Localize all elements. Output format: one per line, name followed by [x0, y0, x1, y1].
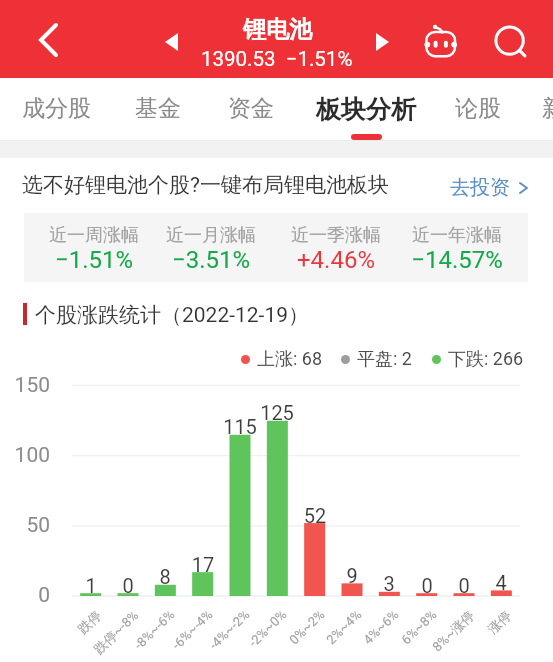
staticText: 115 [210, 415, 270, 438]
staticText: 新闻 [542, 94, 553, 123]
staticText: 9 [322, 564, 382, 587]
staticText: 锂电池 [243, 15, 312, 44]
staticText: -4%~-2% [156, 607, 252, 662]
staticText: 0 [98, 574, 158, 597]
staticText: 0%~2% [231, 607, 327, 662]
button[interactable]: Search [488, 18, 532, 62]
staticText: 跌停 [7, 607, 104, 662]
staticText: +4.46% [266, 246, 406, 274]
staticText: 8%~涨停 [380, 607, 477, 662]
staticText: 4%~6% [305, 607, 401, 662]
staticText: 下跌: 266 [448, 348, 524, 370]
button[interactable]: 下跌: 266 [432, 348, 524, 370]
staticText: 基金 [135, 94, 181, 123]
button[interactable]: AI assistant [418, 18, 462, 62]
staticText: 个股涨跌统计（2022-12-19） [35, 302, 310, 328]
staticText: 8 [135, 565, 195, 588]
staticText: 1 [61, 574, 121, 597]
staticText: 近一月涨幅 [141, 224, 281, 247]
staticText: −3.51% [141, 246, 281, 274]
staticText: -6%~-4% [119, 607, 215, 662]
staticText: 近一年涨幅 [387, 224, 527, 247]
staticText: −1.51% [24, 246, 164, 274]
button[interactable]: 平盘: 2 [341, 348, 412, 370]
staticText: 资金 [228, 94, 274, 123]
staticText: 去投资 [450, 175, 510, 200]
button[interactable]: Previous sector [155, 26, 187, 58]
staticText: 1390.53 −1.51% [201, 47, 353, 71]
staticText: 6%~8% [343, 607, 439, 662]
staticText: 0 [434, 574, 494, 597]
button[interactable]: 板块分析 [311, 78, 421, 141]
button[interactable]: 论股 [434, 78, 522, 141]
button[interactable]: 上涨: 68 [241, 348, 323, 370]
staticText: 选不好锂电池个股?一键布局锂电池板块 [22, 172, 389, 198]
staticText: 跌停~-8% [44, 607, 141, 662]
staticText: 0 [0, 583, 50, 608]
staticText: 4 [471, 571, 531, 594]
button[interactable]: 新闻 [521, 78, 553, 141]
staticText: 成分股 [22, 94, 91, 123]
staticText: 150 [0, 373, 50, 398]
staticText: -2%~0% [193, 607, 289, 662]
staticText: 50 [0, 513, 50, 538]
staticText: 近一周涨幅 [24, 224, 164, 247]
button[interactable]: 资金 [207, 78, 295, 141]
staticText: 近一季涨幅 [266, 224, 406, 247]
staticText: -8%~-6% [81, 607, 177, 662]
button[interactable]: Next sector [366, 26, 398, 58]
staticText: 论股 [455, 94, 501, 123]
button[interactable]: Go invest [450, 175, 528, 200]
staticText: 52 [285, 504, 345, 527]
staticText: 板块分析 [316, 94, 416, 125]
button[interactable]: 成分股 [12, 78, 100, 141]
staticText: 涨停 [417, 607, 514, 662]
staticText: 17 [173, 553, 233, 576]
staticText: −14.57% [387, 246, 527, 274]
staticText: 平盘: 2 [357, 348, 412, 370]
button[interactable]: Back [26, 18, 70, 62]
staticText: 2%~4% [268, 607, 364, 662]
staticText: 100 [0, 443, 50, 468]
staticText: 3 [359, 572, 419, 595]
staticText: 0 [397, 574, 457, 597]
staticText: 125 [247, 401, 307, 424]
button[interactable]: 基金 [114, 78, 202, 141]
staticText: 上涨: 68 [257, 348, 323, 370]
